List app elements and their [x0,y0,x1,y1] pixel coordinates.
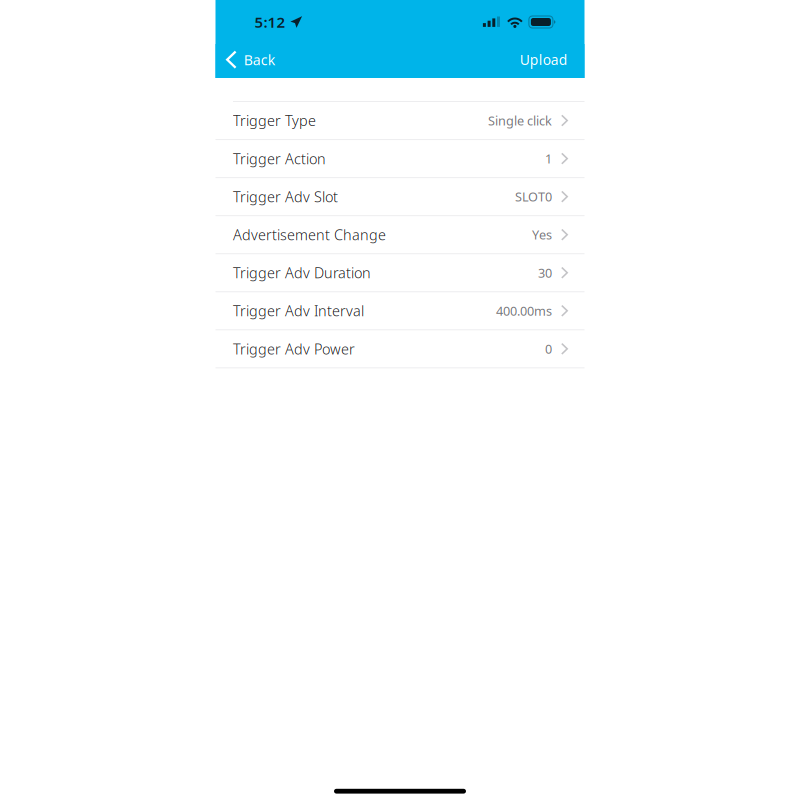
button[interactable]: Trigger Adv Interval [215,292,584,329]
button[interactable]: Trigger Adv Slot [215,178,584,215]
staticText: Trigger Type [233,111,316,130]
staticText: Trigger Adv Slot [233,187,338,206]
button[interactable]: Trigger Action [215,140,584,177]
staticText: 5:12 [254,12,285,32]
button[interactable]: Upload [510,46,584,73]
staticText: Advertisement Change [233,225,386,244]
staticText: SLOT0 [515,188,552,205]
staticText: 1 [545,150,552,167]
staticText: Yes [532,226,552,243]
staticText: 0 [545,340,552,357]
staticText: Trigger Adv Interval [233,301,364,321]
staticText: Trigger Adv Duration [233,263,371,282]
staticText: 30 [538,264,552,281]
button[interactable]: Trigger Adv Power [215,330,584,367]
staticText: Single click [488,112,552,129]
staticText: Back [244,50,276,69]
button[interactable]: Trigger Adv Duration [215,254,584,291]
staticText: 400.00ms [496,302,552,319]
button[interactable]: Advertisement Change [215,216,584,253]
staticText: Upload [520,50,568,69]
button[interactable]: Trigger Type [215,102,584,139]
staticText: Trigger Action [233,149,326,168]
staticText: Trigger Adv Power [233,339,355,359]
button[interactable]: Back [215,48,286,71]
